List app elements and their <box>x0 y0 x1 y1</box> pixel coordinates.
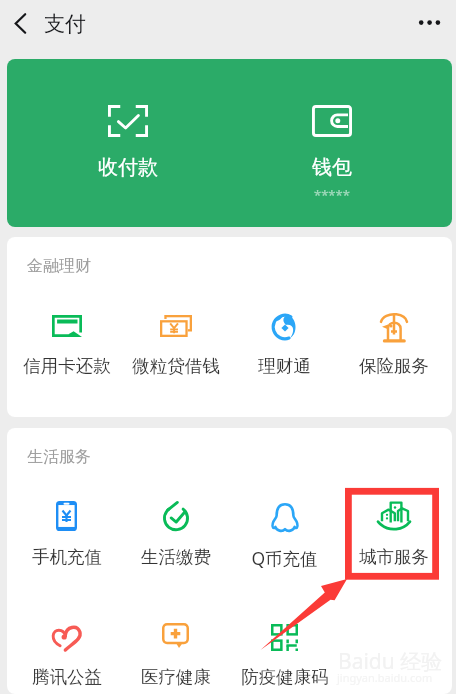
button[interactable]: 理财通 <box>230 305 339 380</box>
button[interactable]: 钱包 <box>211 59 452 227</box>
button[interactable]: 腾讯公益 <box>12 616 121 691</box>
button[interactable]: 信用卡还款 <box>12 307 121 380</box>
button[interactable]: 保险服务 <box>339 305 448 380</box>
button[interactable]: 城市服务 <box>339 494 448 571</box>
button[interactable]: Q币充值 <box>230 495 339 571</box>
staticText: 生活服务 <box>27 447 91 467</box>
button[interactable]: 医疗健康 <box>121 615 230 691</box>
staticText: 信用卡还款 <box>23 355 111 377</box>
staticText: 支付 <box>44 11 86 37</box>
button[interactable]: Back <box>0 1 42 45</box>
staticText: 防疫健康码 <box>241 666 329 688</box>
staticText: 城市服务 <box>359 546 429 568</box>
button[interactable]: 手机充值 <box>12 493 121 571</box>
staticText: 理财通 <box>258 355 311 377</box>
staticText: ***** <box>314 186 350 204</box>
staticText: 腾讯公益 <box>32 666 102 688</box>
button[interactable]: 微粒贷借钱 <box>121 307 230 380</box>
staticText: 金融理财 <box>27 256 91 276</box>
button[interactable]: 生活缴费 <box>121 493 230 571</box>
staticText: 收付款 <box>98 155 158 180</box>
staticText: 手机充值 <box>32 546 102 568</box>
button[interactable]: 防疫健康码 <box>230 616 339 691</box>
staticText: 微粒贷借钱 <box>132 355 220 377</box>
staticText: 保险服务 <box>359 355 429 377</box>
staticText: jingyan.baidu.com <box>337 670 433 685</box>
staticText: 钱包 <box>312 155 352 180</box>
staticText: Baidu 经验 <box>338 647 443 676</box>
button[interactable]: More options <box>412 2 456 44</box>
staticText: 生活缴费 <box>141 546 211 568</box>
staticText: Q币充值 <box>251 546 318 570</box>
staticText: 医疗健康 <box>141 666 211 688</box>
button[interactable]: 收付款 <box>7 59 248 227</box>
